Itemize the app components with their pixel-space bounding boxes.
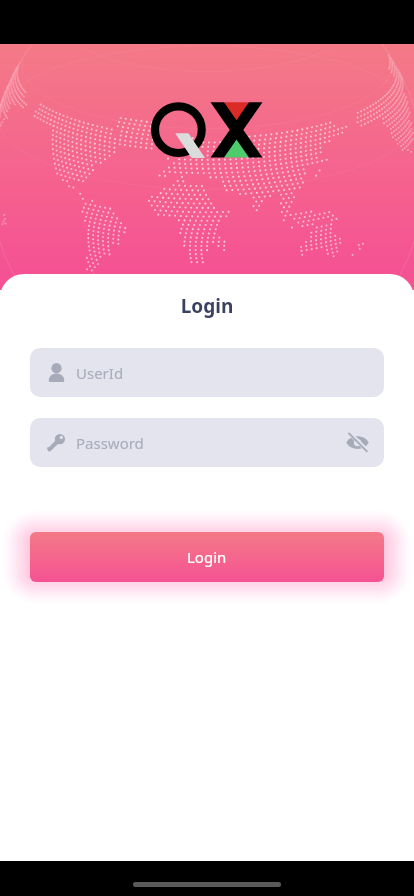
button[interactable]: UserId	[30, 348, 384, 397]
button[interactable]: Password	[30, 418, 384, 467]
other: Toggle password visibility	[345, 430, 370, 455]
staticText: UserId	[76, 363, 384, 383]
staticText: Login	[0, 293, 414, 319]
staticText: Login	[187, 547, 227, 567]
button[interactable]: Login	[30, 532, 384, 582]
staticText: Password	[76, 433, 345, 453]
